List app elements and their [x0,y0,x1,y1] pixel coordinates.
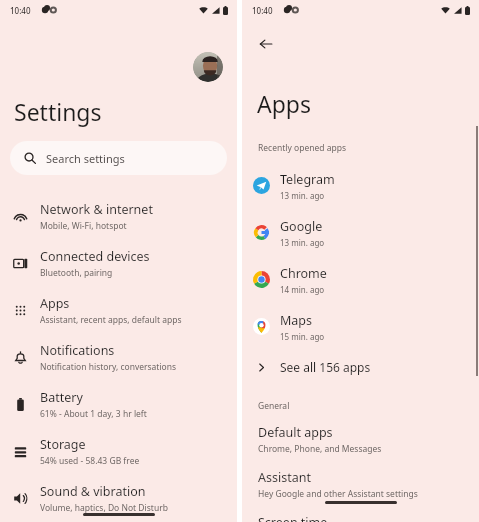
staticText: Bluetooth, pairing [40,267,113,279]
button[interactable]: Maps [242,303,479,350]
staticText: Apps [40,295,70,312]
staticText: Settings [14,96,102,127]
staticText: Hey Google and other Assistant settings [258,488,418,500]
staticText: Network & internet [40,201,153,218]
staticText: Volume, haptics, Do Not Disturb [40,502,168,514]
staticText: 61% - About 1 day, 3 hr left [40,408,147,420]
staticText: 54% used - 58.43 GB free [40,455,140,467]
staticText: 10:40 [10,5,31,16]
button[interactable]: Notifications [0,334,237,381]
button[interactable]: Battery [0,381,237,428]
staticText: Battery [40,389,83,406]
staticText: Storage [40,436,86,453]
button[interactable]: Search settings [10,141,227,175]
button[interactable]: Connected devices [0,240,237,287]
button[interactable]: Network & internet [0,193,237,240]
staticText: Sound & vibration [40,483,146,500]
staticText: Screen time [258,514,328,522]
staticText: Default apps [258,424,333,441]
staticText: 15 min. ago [280,331,325,342]
button[interactable]: See all 156 apps [242,350,479,384]
staticText: Chrome [280,265,327,282]
staticText: Mobile, Wi-Fi, hotspot [40,220,127,232]
staticText: 13 min. ago [280,190,325,201]
button[interactable]: Apps [0,287,237,334]
staticText: Notifications [40,342,115,359]
staticText: Search settings [46,151,125,166]
staticText: See all 156 apps [280,359,371,375]
button[interactable]: Screen time [242,514,479,522]
button[interactable]: Google [242,209,479,256]
button[interactable]: Storage [0,428,237,475]
staticText: Telegram [280,171,335,188]
staticText: Connected devices [40,248,150,265]
staticText: Notification history, conversations [40,361,177,373]
staticText: Maps [280,312,313,329]
staticText: Apps [257,88,312,119]
staticText: Chrome, Phone, and Messages [258,443,382,455]
staticText: Google [280,218,323,235]
staticText: 10:40 [252,5,273,16]
staticText: 13 min. ago [280,237,325,248]
staticText: Assistant, recent apps, default apps [40,314,182,326]
staticText: General [258,400,290,412]
button[interactable]: Sound & vibration [0,475,237,522]
staticText: Assistant [258,469,311,486]
button[interactable]: Default apps [242,424,479,455]
staticText: Recently opened apps [258,142,346,154]
staticText: 14 min. ago [280,284,325,295]
button[interactable]: Chrome [242,256,479,303]
button[interactable]: Back [252,30,280,58]
button[interactable]: Telegram [242,162,479,209]
button[interactable]: Account [193,52,223,82]
button[interactable]: Assistant [242,469,479,500]
